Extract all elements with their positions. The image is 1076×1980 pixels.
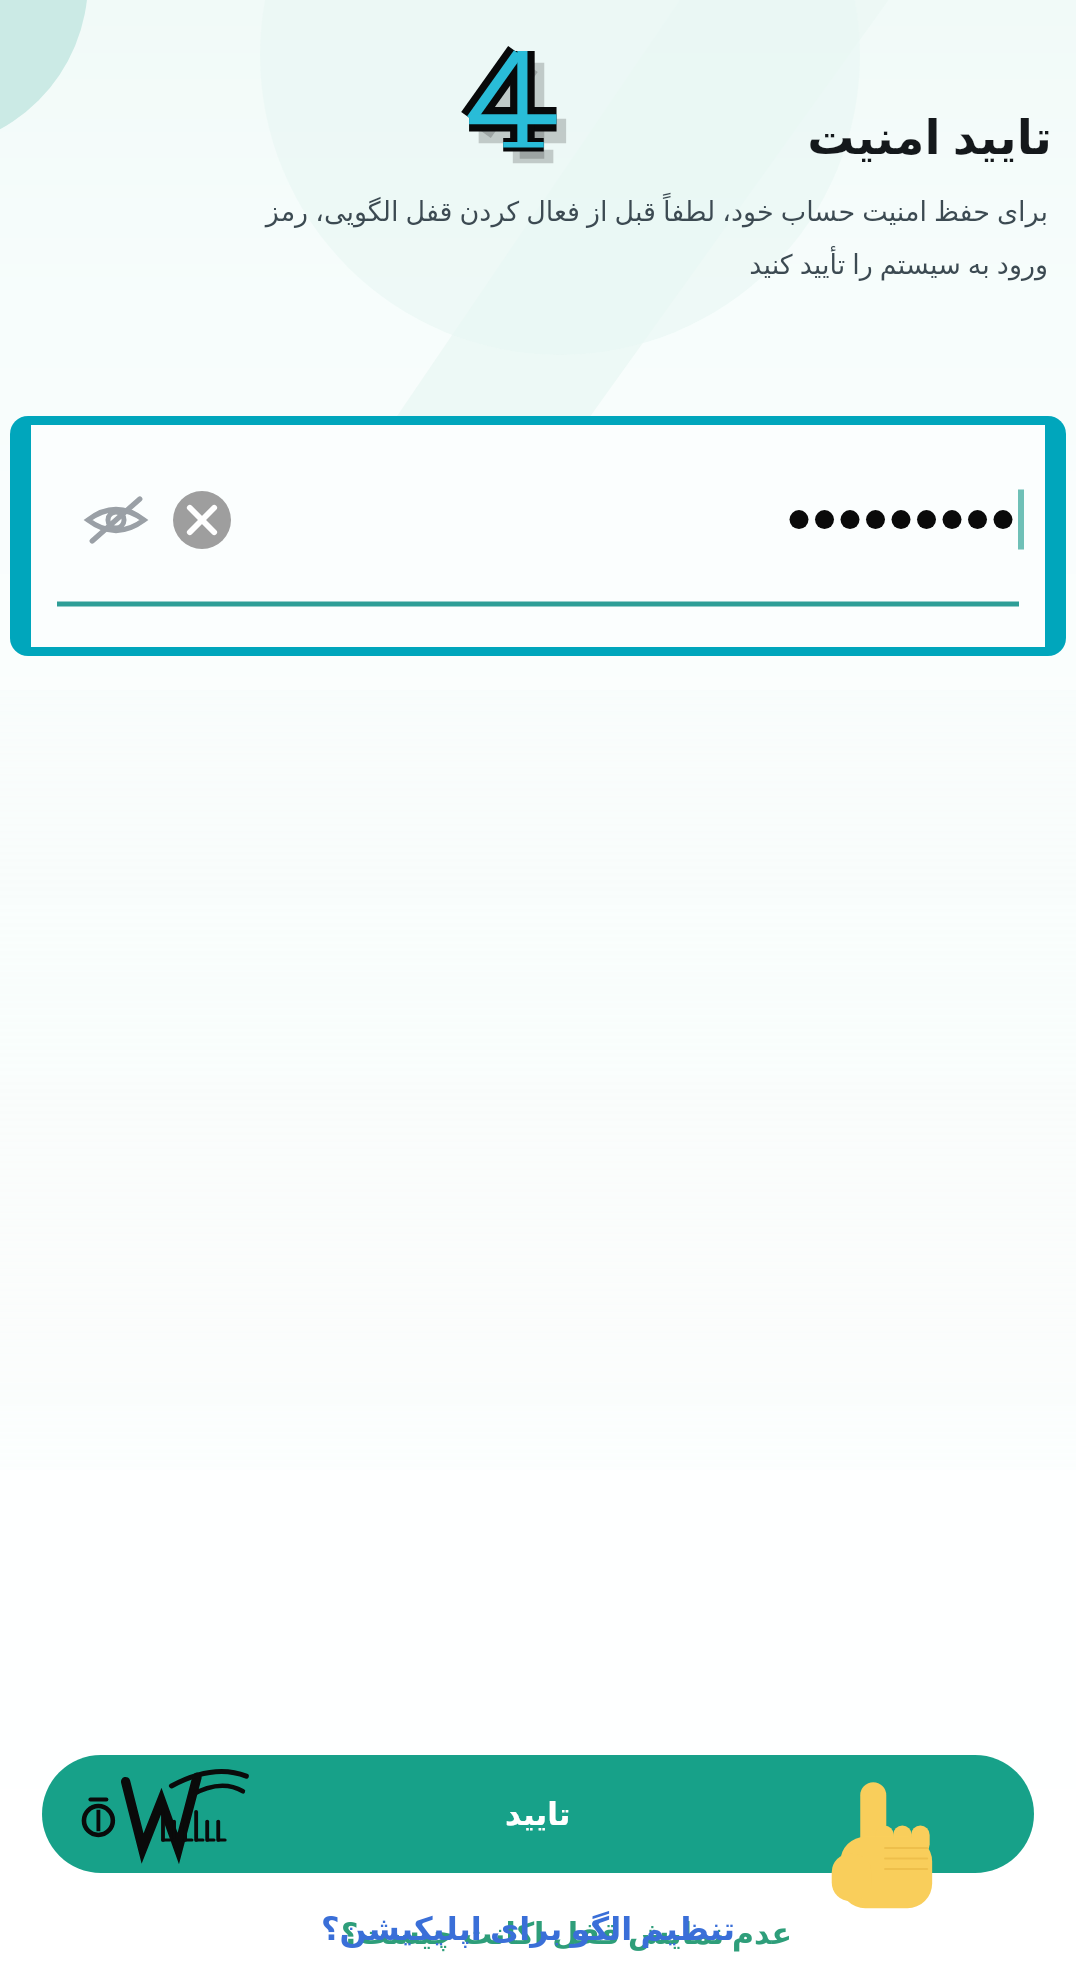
button[interactable]: تایید bbox=[42, 1755, 1034, 1873]
button[interactable]: نمایش رمز bbox=[10, 416, 1066, 656]
staticText: تنظیم الگو برای اپلیکیشن؟ bbox=[321, 1906, 735, 1950]
button[interactable]: نمایش رمز bbox=[81, 485, 151, 555]
staticText: تایید امنیت bbox=[807, 104, 1052, 168]
staticText: تایید bbox=[505, 1796, 571, 1832]
staticText: عدم نمایش قفل اکانت چیست؟ bbox=[341, 1912, 792, 1953]
button[interactable]: پاک کردن bbox=[173, 491, 231, 549]
staticText: برای حفظ امنیت حساب خود، لطفاً قبل از فع… bbox=[265, 192, 1048, 229]
staticText: ورود به سیستم را تأیید کنید bbox=[749, 245, 1048, 282]
